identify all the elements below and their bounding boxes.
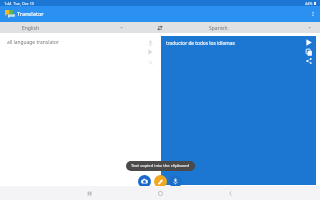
staticText: Spanish bbox=[209, 25, 228, 32]
staticText: Text copied into the clipboard bbox=[131, 163, 190, 169]
staticText: all language translator bbox=[7, 39, 59, 46]
button[interactable]: Swap languages bbox=[146, 22, 174, 33]
button[interactable]: English bbox=[0, 22, 130, 33]
button[interactable]: Voice input bbox=[144, 37, 156, 49]
staticText: traductor de todos los idiomas bbox=[166, 40, 235, 47]
button[interactable]: Handwriting bbox=[154, 175, 167, 188]
button[interactable]: Home bbox=[147, 186, 173, 200]
button[interactable]: More options bbox=[306, 6, 320, 22]
button[interactable]: Copy bbox=[303, 46, 315, 58]
button[interactable]: Back bbox=[217, 186, 243, 200]
button[interactable]: Recents bbox=[76, 186, 102, 200]
button[interactable]: Spanish bbox=[175, 22, 320, 33]
button[interactable]: Clear text bbox=[144, 56, 156, 68]
staticText: 1:44 Tue, Dec 15 bbox=[4, 1, 34, 6]
button[interactable]: Camera translate bbox=[138, 175, 151, 188]
staticText: English bbox=[22, 25, 40, 32]
button[interactable]: Listen bbox=[144, 46, 156, 58]
button[interactable]: Voice input bbox=[169, 175, 182, 188]
button[interactable]: Listen bbox=[303, 36, 315, 48]
staticText: 44% bbox=[305, 1, 313, 6]
staticText: Translator bbox=[17, 10, 44, 18]
button[interactable]: Share bbox=[303, 55, 315, 67]
